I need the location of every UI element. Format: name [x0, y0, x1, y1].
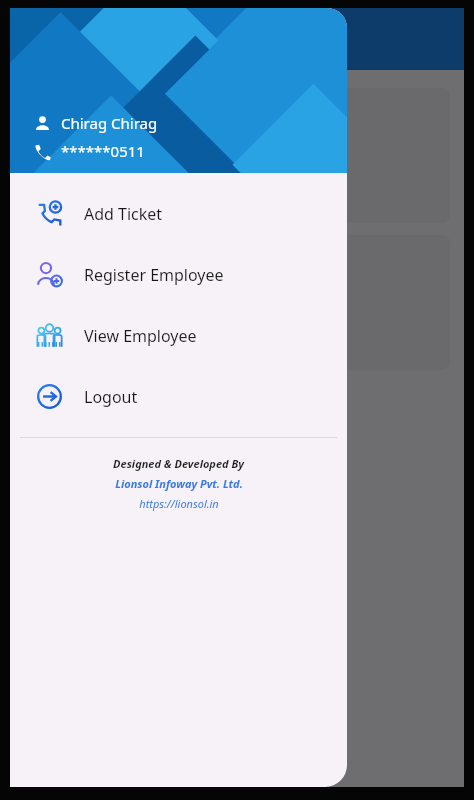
button[interactable]: https://lionsol.in	[139, 496, 219, 511]
staticText: Add Ticket	[84, 203, 163, 225]
staticText: ******0511	[61, 141, 145, 161]
button[interactable]: Services	[24, 88, 450, 223]
button[interactable]: View Employee	[10, 305, 347, 366]
button[interactable]: Add Ticket	[10, 183, 347, 244]
staticText: Designed & Developed By	[113, 456, 244, 471]
button[interactable]: Register Employee	[10, 244, 347, 305]
staticText: View Employee	[84, 325, 197, 347]
staticText: Register Employee	[84, 264, 224, 286]
staticText: Chirag Chirag	[61, 113, 158, 133]
staticText: Logout	[84, 386, 138, 408]
button[interactable]: AMC	[24, 235, 450, 370]
button[interactable]: Lionsol Infoway Pvt. Ltd.	[115, 476, 243, 491]
button[interactable]: Logout	[10, 366, 347, 427]
